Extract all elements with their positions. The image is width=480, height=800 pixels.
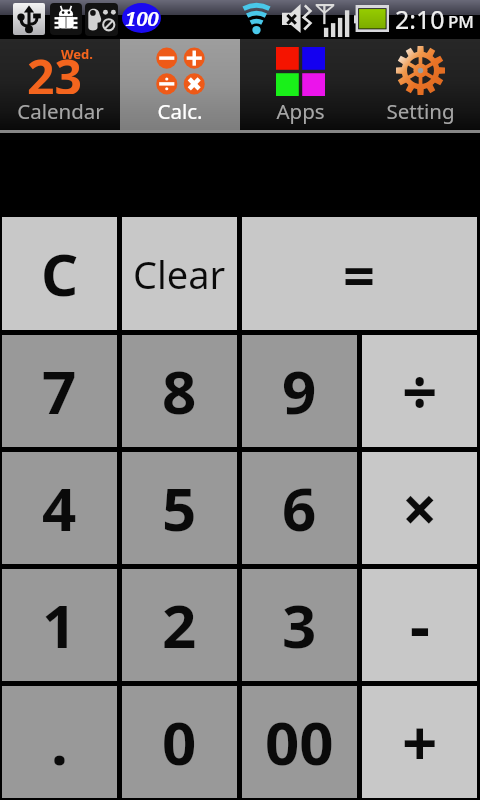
staticText: 00 <box>265 701 334 783</box>
staticText: Calendar <box>17 97 104 125</box>
button[interactable]: 1 <box>2 569 117 681</box>
button[interactable]: + <box>362 686 477 798</box>
button[interactable]: 23 <box>0 39 120 130</box>
button[interactable]: 3 <box>242 569 357 681</box>
button[interactable]: 0 <box>122 686 237 798</box>
button[interactable]: = <box>242 217 477 330</box>
button[interactable]: C <box>2 217 117 330</box>
staticText: ÷ <box>402 349 438 433</box>
staticText: 9 <box>282 350 317 432</box>
staticText: Clear <box>133 248 226 300</box>
staticText: 0 <box>162 701 197 783</box>
button[interactable]: 2 <box>122 569 237 681</box>
staticText: C <box>41 234 79 313</box>
button[interactable]: Clear <box>122 217 237 330</box>
button[interactable]: ÷ <box>362 335 477 447</box>
staticText: × <box>402 466 438 550</box>
staticText: 6 <box>282 467 317 549</box>
button[interactable]: - <box>362 569 477 681</box>
button[interactable]: × <box>362 452 477 564</box>
staticText: 7 <box>42 350 77 432</box>
staticText: PM <box>448 10 474 33</box>
button[interactable]: 9 <box>242 335 357 447</box>
button[interactable]: 6 <box>242 452 357 564</box>
button[interactable]: 00 <box>242 686 357 798</box>
staticText: 100 <box>125 5 159 32</box>
staticText: 4 <box>42 467 77 549</box>
staticText: Apps <box>276 97 325 125</box>
staticText: 5 <box>162 467 197 549</box>
staticText: 2 <box>162 584 197 666</box>
staticText: 8 <box>162 350 197 432</box>
staticText: Calc. <box>157 97 203 125</box>
staticText: + <box>402 700 438 784</box>
button[interactable]: . <box>2 686 117 798</box>
button[interactable]: 7 <box>2 335 117 447</box>
button[interactable]: 4 <box>2 452 117 564</box>
staticText: . <box>51 701 68 783</box>
staticText: 1 <box>42 584 77 666</box>
button[interactable]: Apps <box>240 39 360 130</box>
staticText: 2:10 <box>395 2 445 36</box>
staticText: = <box>343 236 376 312</box>
button[interactable]: 5 <box>122 452 237 564</box>
button[interactable]: Calc. <box>120 39 240 130</box>
staticText: Setting <box>386 97 455 125</box>
staticText: - <box>410 583 430 667</box>
button[interactable]: Setting <box>360 39 480 130</box>
staticText: 3 <box>282 584 317 666</box>
staticText: Wed. <box>61 45 93 63</box>
staticText: 23 <box>27 44 82 94</box>
button[interactable]: 8 <box>122 335 237 447</box>
